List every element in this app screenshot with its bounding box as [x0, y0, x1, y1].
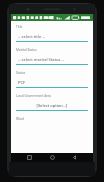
staticText: PCF [18, 80, 26, 85]
staticText: Local Government Area [16, 94, 52, 98]
button[interactable]: Back [70, 153, 79, 162]
staticText: -- select title -- [18, 34, 45, 39]
staticText: [Select option...] [16, 103, 88, 108]
staticText: -- select marital Status -- [18, 57, 65, 62]
staticText: Ward [16, 117, 24, 121]
button[interactable]: Title [16, 25, 88, 42]
button[interactable]: Recent apps [25, 153, 34, 162]
staticText: Marital Status [16, 48, 37, 52]
button[interactable]: Home [48, 153, 57, 162]
button[interactable]: Status [16, 71, 88, 88]
staticText: Title [16, 25, 23, 29]
staticText: Status [16, 71, 26, 75]
button[interactable]: Marital Status [16, 48, 88, 65]
button[interactable]: Local Government Area [16, 94, 88, 111]
